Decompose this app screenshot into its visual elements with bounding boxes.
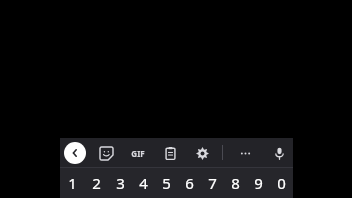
button[interactable]: 3: [108, 168, 132, 198]
button[interactable]: 2: [84, 168, 108, 198]
staticText: 0: [277, 173, 286, 193]
button[interactable]: Settings: [191, 142, 213, 164]
staticText: 2: [92, 173, 101, 193]
button[interactable]: GIF: [127, 142, 149, 164]
staticText: 4: [139, 173, 148, 193]
button[interactable]: Stickers: [95, 142, 117, 164]
staticText: 7: [208, 173, 217, 193]
staticText: GIF: [131, 148, 145, 159]
button[interactable]: 6: [178, 168, 201, 198]
staticText: 6: [185, 173, 194, 193]
button[interactable]: More options: [234, 142, 256, 164]
staticText: 8: [231, 173, 240, 193]
button[interactable]: Voice input: [268, 142, 290, 164]
staticText: 3: [116, 173, 125, 193]
staticText: 9: [254, 173, 263, 193]
button[interactable]: Clipboard: [159, 142, 181, 164]
button[interactable]: Back: [64, 142, 86, 164]
button[interactable]: 9: [247, 168, 270, 198]
button[interactable]: 4: [132, 168, 155, 198]
button[interactable]: 8: [224, 168, 247, 198]
button[interactable]: 5: [155, 168, 178, 198]
staticText: 1: [68, 173, 77, 193]
button[interactable]: 0: [270, 168, 293, 198]
button[interactable]: 7: [201, 168, 224, 198]
staticText: 5: [162, 173, 171, 193]
button[interactable]: 1: [60, 168, 84, 198]
